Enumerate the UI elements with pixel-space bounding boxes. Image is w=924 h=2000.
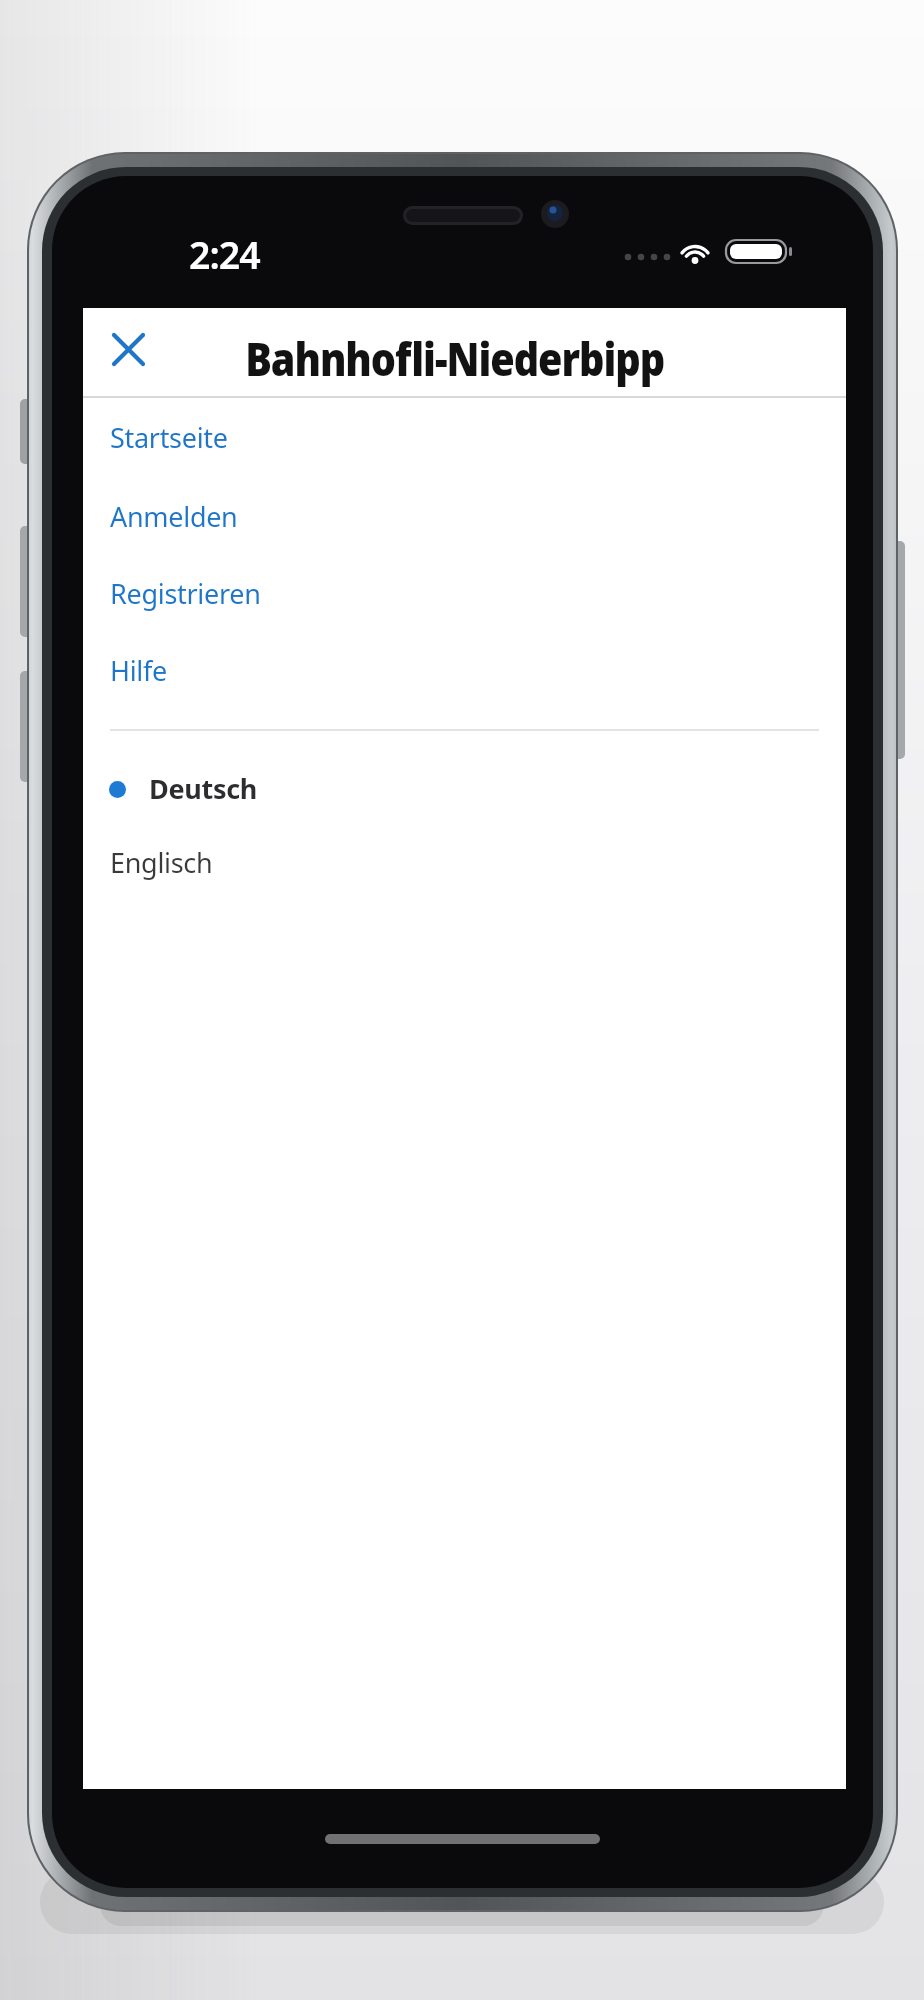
- button[interactable]: Deutsch: [97, 760, 397, 818]
- staticText: Startseite: [110, 419, 228, 456]
- button[interactable]: Startseite: [102, 409, 220, 446]
- staticText: Bahnhofli-Niederbipp: [245, 327, 665, 390]
- button[interactable]: Registrieren: [102, 565, 253, 602]
- button[interactable]: [97, 318, 159, 380]
- button[interactable]: Anmelden: [102, 488, 230, 525]
- staticText: Anmelden: [110, 498, 238, 535]
- staticText: Englisch: [110, 844, 213, 881]
- staticText: Hilfe: [110, 652, 167, 689]
- staticText: Deutsch: [149, 770, 258, 807]
- staticText: 2:24: [189, 229, 260, 280]
- staticText: Registrieren: [110, 575, 261, 612]
- button[interactable]: Hilfe: [102, 642, 159, 679]
- button[interactable]: Englisch: [97, 834, 397, 892]
